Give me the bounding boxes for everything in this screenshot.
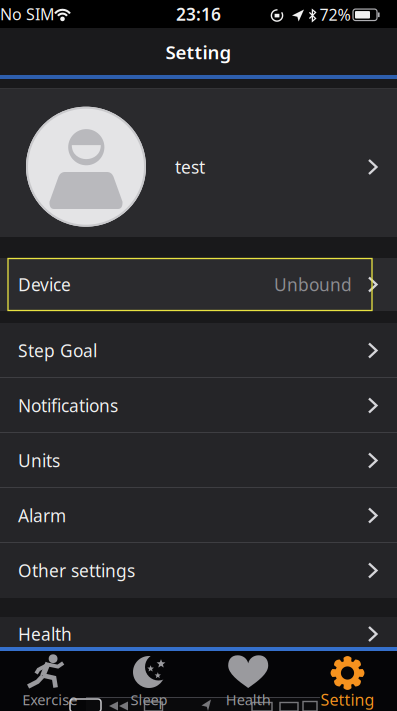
staticText: Setting: [320, 689, 374, 710]
button[interactable]: Setting: [298, 651, 397, 711]
staticText: 23:16: [176, 2, 221, 25]
staticText: Sleep: [130, 690, 167, 709]
staticText: No SIM: [0, 3, 55, 25]
staticText: Units: [18, 449, 60, 472]
button[interactable]: Exercise: [0, 651, 99, 711]
staticText: Health: [18, 622, 72, 645]
button[interactable]: Units: [0, 433, 397, 488]
staticText: Notifications: [18, 394, 118, 417]
button[interactable]: Other settings: [0, 543, 397, 598]
staticText: Health: [226, 690, 271, 709]
button[interactable]: Sleep: [99, 651, 198, 711]
staticText: Other settings: [18, 559, 135, 582]
button[interactable]: Device: [0, 258, 397, 311]
button[interactable]: Notifications: [0, 378, 397, 433]
staticText: Alarm: [18, 504, 66, 527]
staticText: test: [175, 155, 205, 178]
button[interactable]: Step Goal: [0, 323, 397, 378]
staticText: Device: [18, 273, 71, 296]
staticText: Setting: [165, 40, 231, 64]
button[interactable]: test: [0, 88, 397, 237]
staticText: Unbound: [274, 273, 352, 296]
button[interactable]: Health: [0, 617, 397, 648]
staticText: Step Goal: [18, 339, 97, 362]
button[interactable]: Alarm: [0, 488, 397, 543]
staticText: Exercise: [22, 690, 77, 709]
button[interactable]: Health: [199, 651, 298, 711]
staticText: 72%: [319, 4, 350, 25]
